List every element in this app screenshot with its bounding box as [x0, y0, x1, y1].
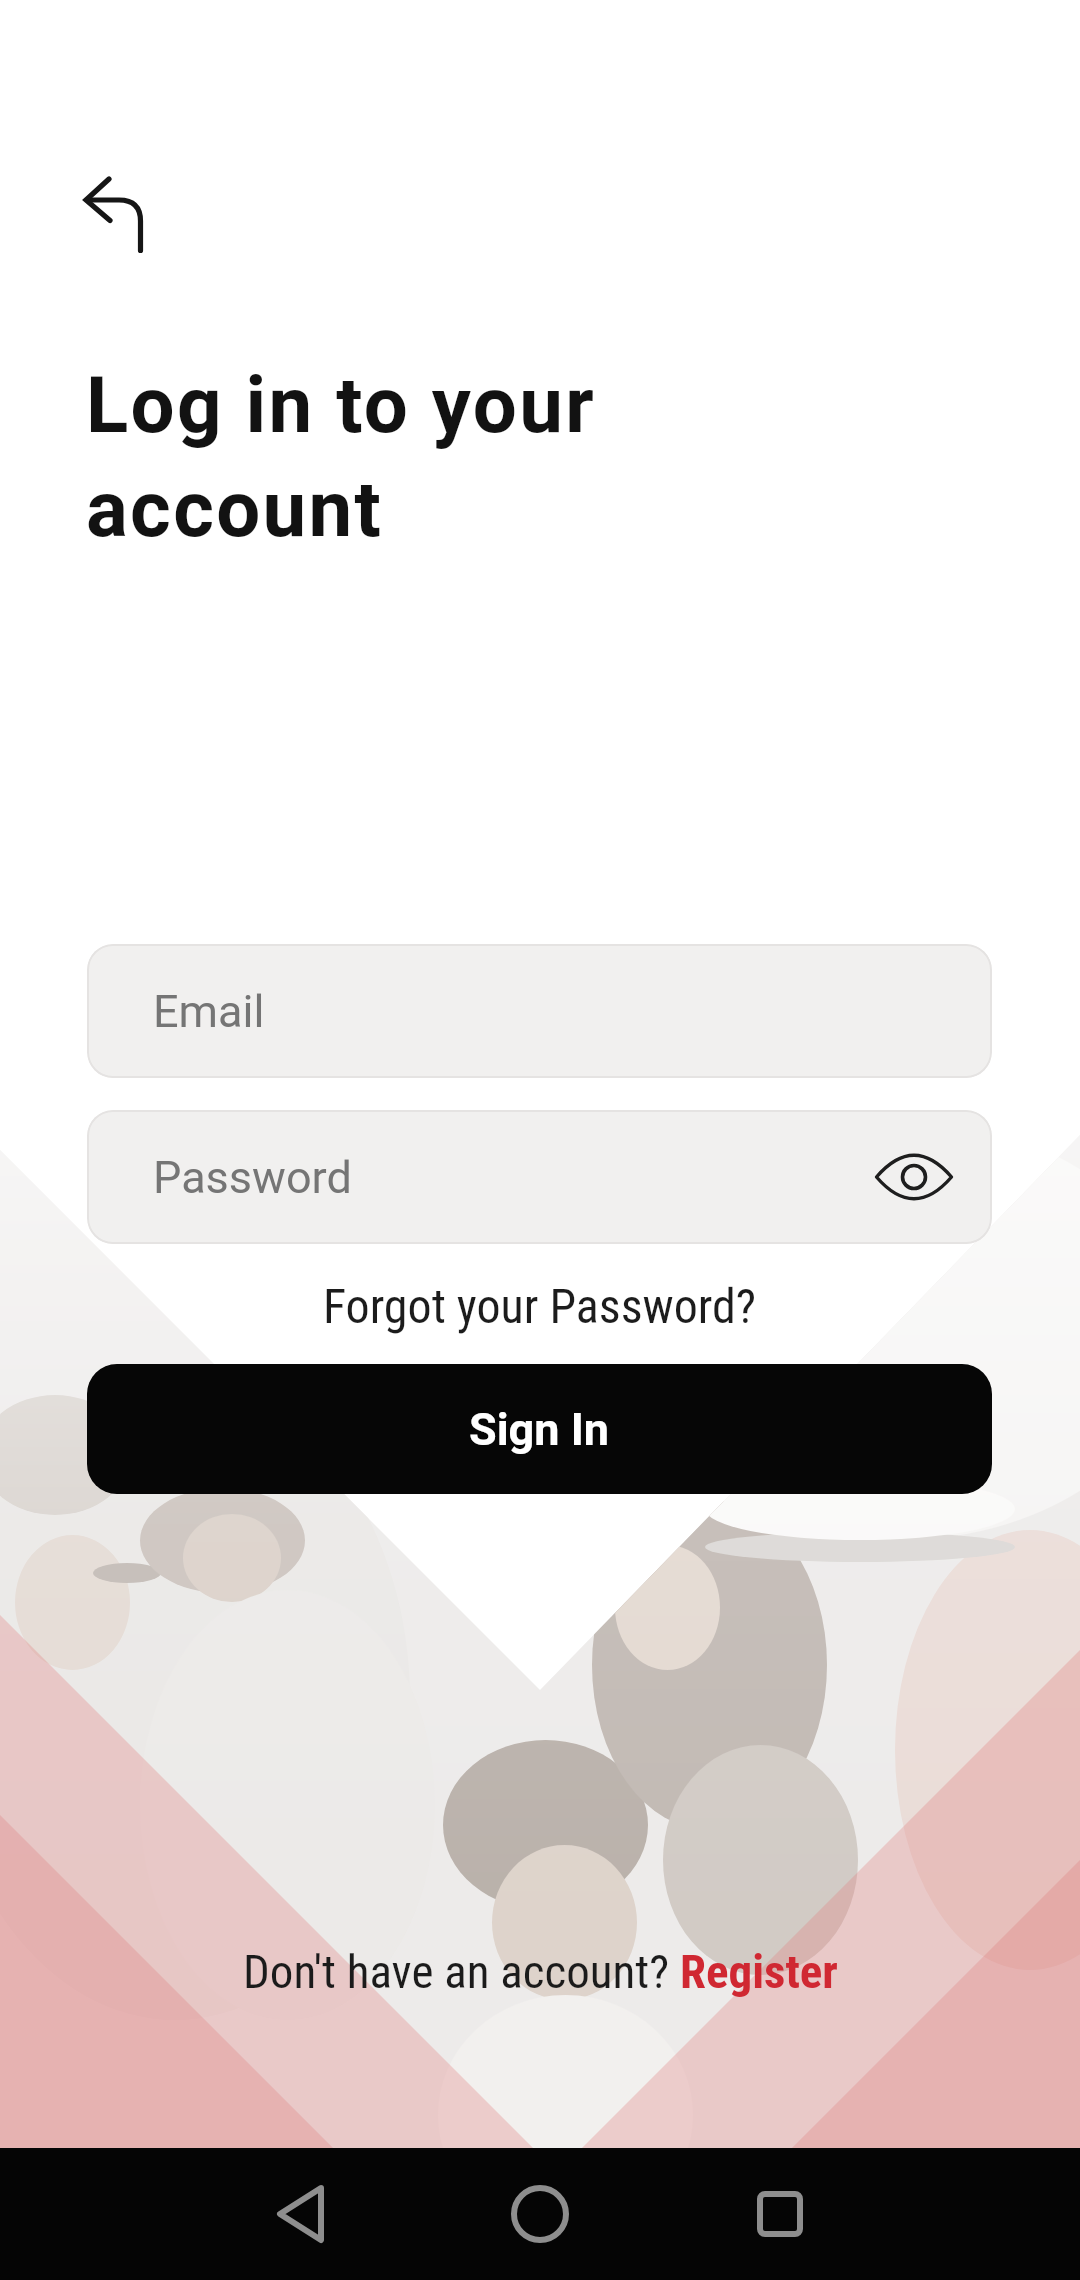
button[interactable]: Sign In: [87, 1364, 992, 1494]
button[interactable]: Email: [87, 944, 992, 1078]
button[interactable]: [250, 2164, 350, 2264]
button[interactable]: [730, 2164, 830, 2264]
staticText: Password: [153, 1151, 352, 1204]
button[interactable]: [64, 160, 164, 270]
staticText: Log in to your account: [86, 360, 596, 555]
button[interactable]: [490, 2164, 590, 2264]
staticText: Forgot your Password?: [323, 1278, 757, 1334]
button[interactable]: [869, 1137, 959, 1217]
button[interactable]: Forgot your Password?: [313, 1272, 767, 1340]
button[interactable]: Register: [680, 1944, 838, 1999]
button[interactable]: Password: [87, 1110, 992, 1244]
staticText: Don't have an account?: [243, 1944, 680, 1999]
staticText: Register: [680, 1944, 838, 1999]
staticText: Email: [153, 985, 265, 1038]
staticText: Sign In: [469, 1403, 610, 1456]
